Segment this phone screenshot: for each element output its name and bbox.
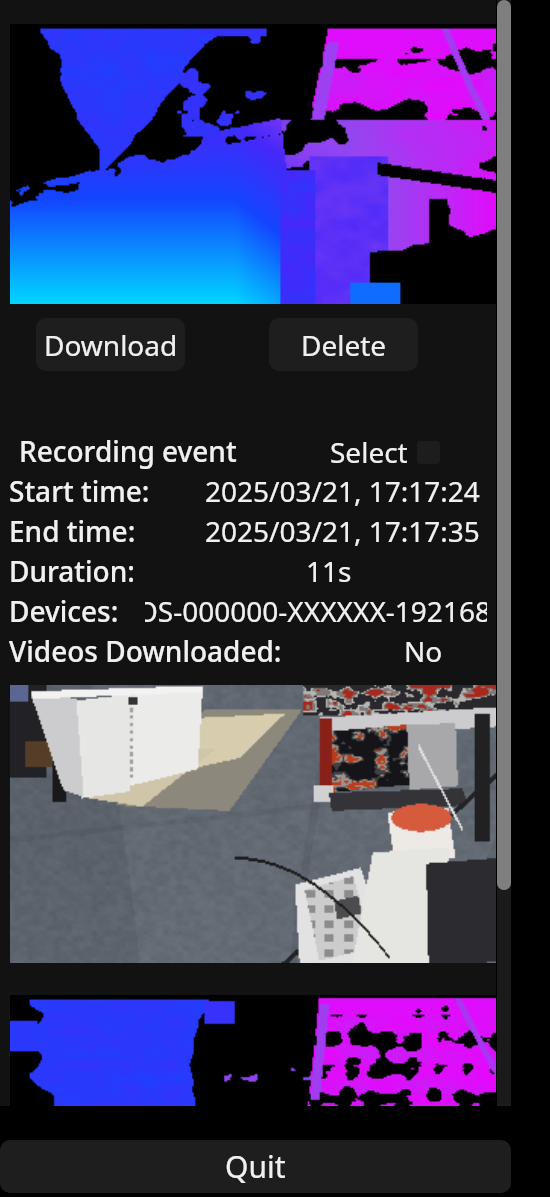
staticText: Start time: (9, 472, 150, 510)
button[interactable]: Download (36, 318, 185, 371)
staticText: Devices: (9, 592, 119, 630)
staticText: 2025/03/21, 17:17:35 (205, 512, 480, 550)
button[interactable]: End time: (0, 512, 496, 552)
staticText: No (404, 632, 443, 670)
staticText: Recording event (19, 432, 237, 470)
staticText: OS-000000-XXXXXX-192168-1 (145, 592, 487, 630)
staticText: 11s (306, 552, 352, 590)
button[interactable]: Devices: (0, 592, 496, 632)
button[interactable]: Delete (269, 318, 418, 371)
staticText: Duration: (9, 552, 135, 590)
staticText: 2025/03/21, 17:17:24 (205, 472, 480, 510)
button[interactable]: Duration: (0, 552, 496, 592)
staticText: Quit (225, 1146, 286, 1187)
button[interactable]: Start time: (0, 472, 496, 512)
staticText: Select (330, 433, 408, 471)
button[interactable]: Select (330, 432, 440, 472)
staticText: Delete (301, 326, 387, 364)
staticText: End time: (9, 512, 136, 550)
staticText: Download (44, 326, 178, 364)
button[interactable]: Quit (0, 1140, 511, 1193)
button[interactable]: Videos Downloaded: (0, 632, 496, 672)
staticText: Videos Downloaded: (9, 632, 282, 670)
